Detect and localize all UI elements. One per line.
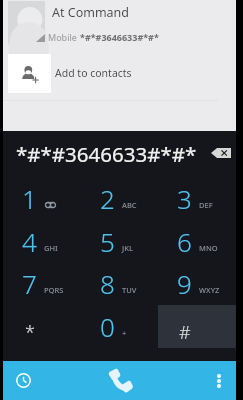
staticText: 5 [100, 224, 115, 259]
button[interactable]: More options [202, 361, 236, 400]
button[interactable]: 3 [158, 177, 236, 220]
button[interactable]: * [3, 305, 81, 348]
staticText: 9 [177, 266, 192, 301]
button[interactable]: Backspace [206, 140, 236, 165]
button[interactable]: Recent calls [3, 361, 43, 400]
button[interactable]: 8 [81, 262, 159, 305]
staticText: WXYZ [199, 285, 220, 295]
staticText: GHI [44, 243, 58, 253]
staticText: PQRS [44, 285, 64, 295]
staticText: ABC [122, 200, 137, 210]
staticText: 7 [22, 266, 37, 301]
button[interactable]: Add to contacts [3, 51, 236, 96]
staticText: DEF [199, 200, 213, 210]
button[interactable]: 2 [81, 177, 159, 220]
staticText: 6 [177, 224, 192, 259]
button[interactable]: Dial pad [97, 361, 143, 400]
button[interactable]: 0 [81, 305, 159, 348]
staticText: 0 [100, 309, 115, 344]
button[interactable]: 5 [81, 220, 159, 263]
button[interactable]: 1 [3, 177, 81, 220]
staticText: JKL [122, 243, 133, 253]
button[interactable]: 7 [3, 262, 81, 305]
button[interactable]: 6 [158, 220, 236, 263]
button[interactable]: 9 [158, 262, 236, 305]
staticText: + [122, 328, 127, 338]
staticText: TUV [122, 285, 137, 295]
staticText: 2 [100, 181, 115, 216]
staticText: At Command [52, 4, 130, 21]
staticText: 1 [22, 181, 37, 216]
staticText: 3 [177, 181, 192, 216]
staticText: 4 [22, 224, 37, 259]
button[interactable]: # [158, 305, 236, 348]
staticText: 8 [100, 266, 115, 301]
staticText: *#*#3646633#*#* [16, 140, 197, 168]
staticText: * [25, 320, 35, 345]
button[interactable]: 4 [3, 220, 81, 263]
staticText: Mobile [48, 31, 80, 43]
staticText: *#*#3646633#*#* [80, 31, 159, 43]
staticText: MNO [199, 243, 218, 253]
staticText: Add to contacts [55, 66, 132, 80]
staticText: # [179, 320, 191, 345]
